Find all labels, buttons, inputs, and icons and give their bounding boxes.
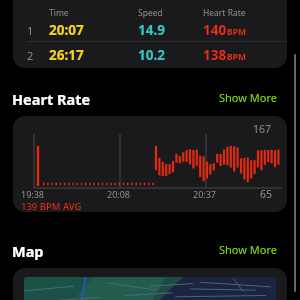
staticText: 20:07 [49,21,84,39]
staticText: 167 [253,122,272,136]
staticText: 140 [203,21,227,39]
staticText: 1 [27,23,34,38]
staticText: Heart Rate [203,7,246,19]
staticText: 10.2 [138,46,165,64]
staticText: BPM [227,26,246,38]
staticText: 19:38 [21,188,45,200]
button[interactable]: Show More [217,88,279,107]
staticText: 14.9 [138,21,165,39]
staticText: 26:17 [49,46,84,64]
staticText: 2 [27,48,34,63]
button[interactable]: Time [13,0,287,68]
staticText: 20:08 [107,188,131,200]
staticText: Map [12,241,44,261]
staticText: 65 [260,187,273,201]
staticText: BPM [227,51,246,63]
staticText: 138 [203,46,227,64]
button[interactable]: Show More [217,240,279,259]
button[interactable]: 167 [13,116,287,212]
staticText: Show More [219,242,277,257]
staticText: Heart Rate [12,89,91,109]
staticText: Speed [138,7,163,19]
button[interactable]: Workout route map [13,268,287,300]
staticText: Show More [219,90,277,105]
staticText: 139 BPM AVG [21,200,82,212]
staticText: Time [49,7,69,19]
staticText: 20:37 [193,188,217,200]
